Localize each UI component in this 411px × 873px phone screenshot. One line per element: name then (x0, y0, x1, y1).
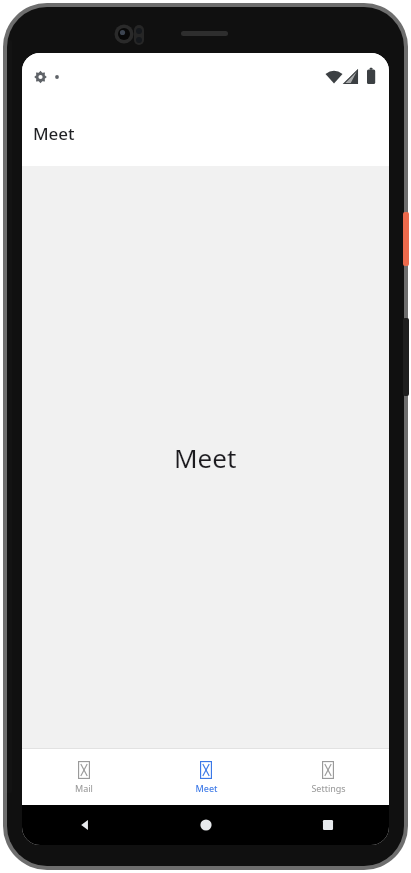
staticText: Meet (33, 122, 75, 145)
button[interactable]: Back (22, 805, 145, 845)
staticText: Settings (311, 782, 346, 794)
button[interactable]: Meet (145, 749, 267, 805)
staticText: Meet (195, 782, 218, 794)
button[interactable]: Recent apps (267, 805, 389, 845)
staticText: Mail (75, 782, 93, 794)
button[interactable]: Mail (22, 749, 145, 805)
staticText: Meet (174, 440, 237, 475)
button[interactable]: Settings (267, 749, 389, 805)
button[interactable]: Home (145, 805, 267, 845)
